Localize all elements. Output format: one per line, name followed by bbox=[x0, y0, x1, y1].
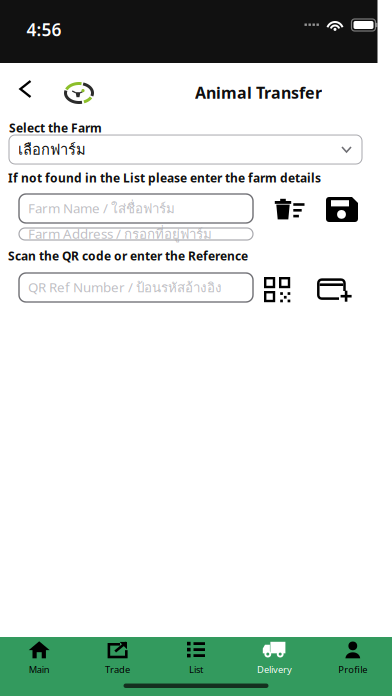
staticText: Farm Name / ใส่ชื่อฟาร์ม bbox=[28, 198, 175, 219]
staticText: Trade bbox=[105, 663, 130, 676]
button[interactable]: Back bbox=[9, 73, 41, 105]
button[interactable]: List bbox=[157, 636, 235, 674]
button[interactable]: Scan QR code bbox=[264, 277, 293, 303]
staticText: Delivery bbox=[257, 663, 292, 676]
staticText: List bbox=[189, 663, 203, 676]
button[interactable]: เลือกฟาร์ม bbox=[9, 135, 362, 164]
staticText: If not found in the List please enter th… bbox=[8, 170, 321, 186]
button[interactable]: Profile bbox=[314, 636, 392, 674]
button[interactable]: Delete farm details bbox=[274, 198, 306, 223]
button[interactable]: Save farm details bbox=[326, 197, 358, 222]
button[interactable]: Add reference manually bbox=[317, 278, 352, 303]
button[interactable]: Delivery bbox=[235, 636, 314, 674]
staticText: Farm Address / กรอกที่อยู่ฟาร์ม bbox=[28, 224, 212, 244]
staticText: Main bbox=[29, 663, 50, 676]
staticText: Select the Farm bbox=[9, 120, 102, 136]
staticText: Profile bbox=[338, 663, 367, 676]
staticText: 4:56 bbox=[26, 18, 61, 41]
staticText: Animal Transfer bbox=[195, 82, 322, 103]
button[interactable]: Trade bbox=[78, 636, 157, 674]
button[interactable]: Main bbox=[0, 636, 78, 674]
staticText: QR Ref Number / ป้อนรหัสอ้างอิง bbox=[28, 277, 222, 298]
staticText: เลือกฟาร์ม bbox=[18, 138, 86, 161]
staticText: Scan the QR code or enter the Reference bbox=[8, 248, 248, 264]
